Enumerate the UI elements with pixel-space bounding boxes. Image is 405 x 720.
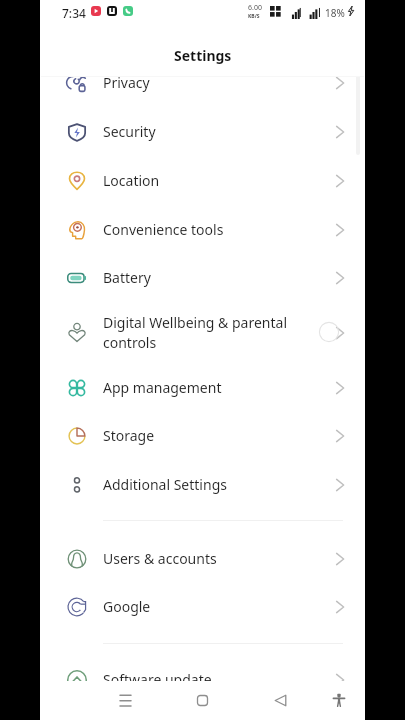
staticText: KB/S <box>248 13 260 20</box>
button[interactable]: Users & accounts <box>40 534 365 583</box>
staticText: 7:34 <box>62 5 86 21</box>
button[interactable]: Location <box>40 156 365 205</box>
staticText: Software update <box>103 670 212 681</box>
button[interactable]: Back <box>260 683 300 718</box>
button[interactable]: Convenience tools <box>40 205 365 254</box>
staticText: Security <box>103 122 156 141</box>
staticText: Convenience tools <box>103 220 224 239</box>
button[interactable]: Google <box>40 582 365 631</box>
staticText: Location <box>103 171 160 190</box>
button[interactable]: Battery <box>40 253 365 302</box>
button[interactable]: App management <box>40 363 365 412</box>
staticText: Digital Wellbeing & parental controls <box>103 313 288 352</box>
button[interactable]: Recent apps <box>105 683 145 718</box>
button[interactable]: Storage <box>40 411 365 460</box>
button[interactable]: Privacy <box>40 77 365 107</box>
staticText: App management <box>103 378 222 397</box>
staticText: Users & accounts <box>103 549 217 568</box>
staticText: 18% <box>325 6 345 20</box>
staticText: Battery <box>103 268 151 287</box>
staticText: Storage <box>103 426 155 445</box>
staticText: Settings <box>174 46 232 65</box>
button[interactable]: Accessibility <box>319 682 359 717</box>
staticText: Google <box>103 597 151 616</box>
button[interactable]: Digital Wellbeing & parental controls <box>40 308 365 357</box>
button[interactable]: Home <box>182 683 222 718</box>
staticText: Additional Settings <box>103 475 227 494</box>
staticText: Privacy <box>103 77 150 92</box>
staticText: 6.00 <box>248 3 262 13</box>
button[interactable]: Additional Settings <box>40 460 365 509</box>
button[interactable]: Security <box>40 107 365 156</box>
button[interactable]: Software update <box>40 655 365 681</box>
